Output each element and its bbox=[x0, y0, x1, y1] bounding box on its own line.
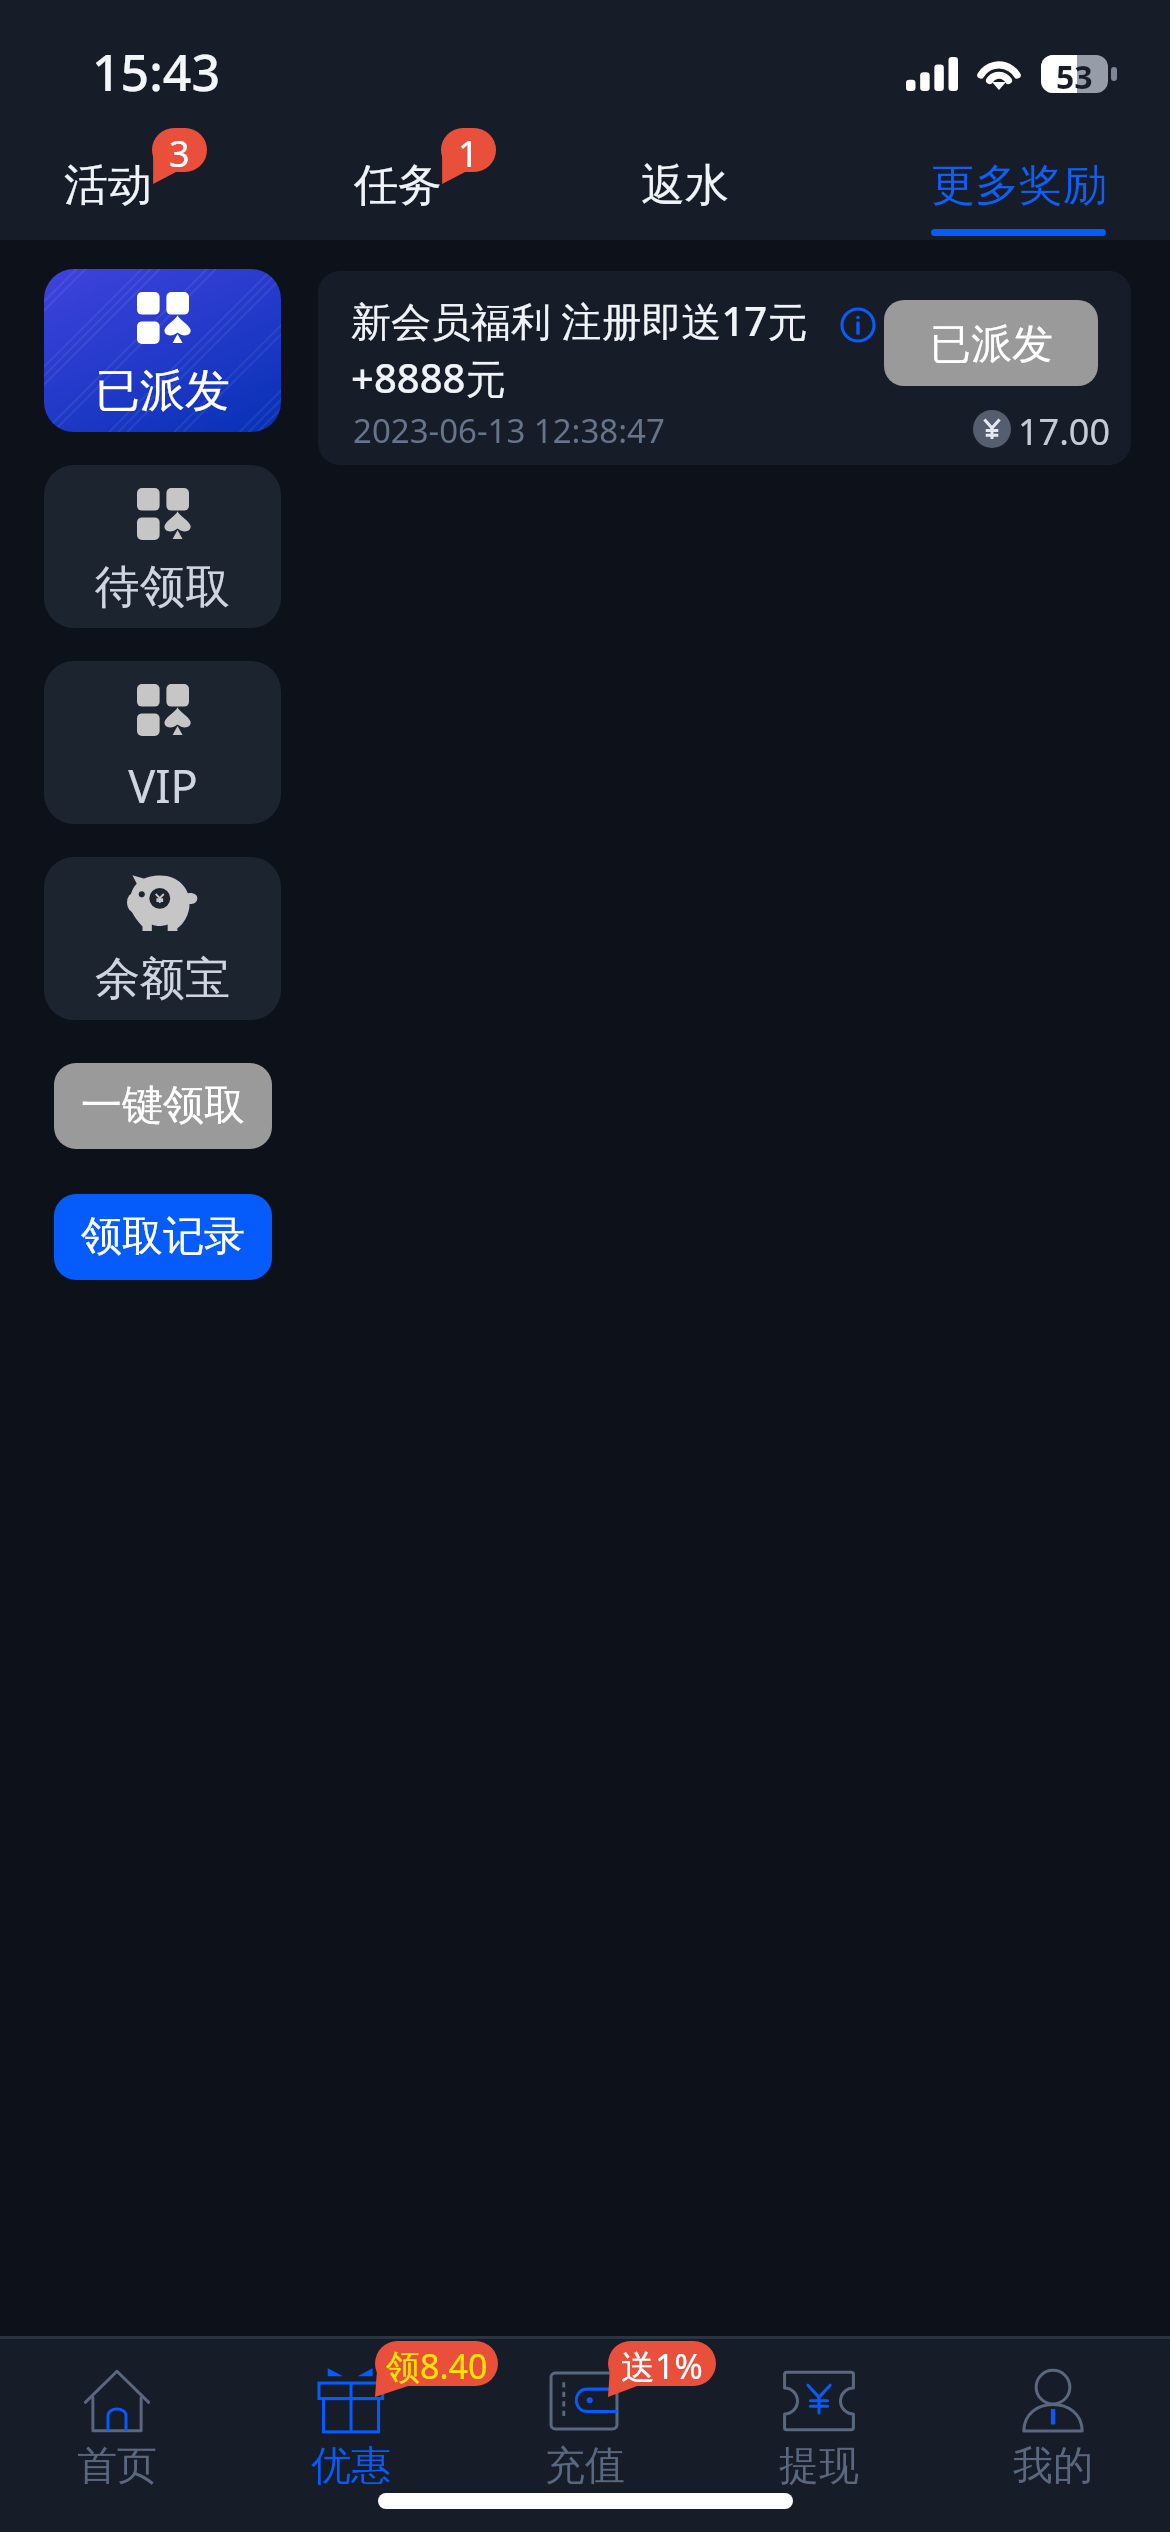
staticText: 3 bbox=[169, 129, 190, 178]
staticText: 领8.40 bbox=[386, 2343, 488, 2389]
button[interactable]: 活动说明 bbox=[840, 307, 876, 343]
button[interactable]: 一键领取 bbox=[54, 1063, 272, 1149]
staticText: 已派发 bbox=[930, 319, 1053, 371]
button[interactable]: 优惠 bbox=[234, 2336, 468, 2532]
button[interactable]: 已派发 bbox=[44, 269, 281, 432]
staticText: 领取记录 bbox=[81, 1211, 245, 1263]
staticText: 任务 bbox=[354, 158, 442, 213]
staticText: 15:43 bbox=[92, 38, 220, 106]
staticText: 优惠 bbox=[311, 2440, 391, 2490]
staticText: 余额宝 bbox=[95, 951, 230, 1008]
button[interactable]: 更多奖励 bbox=[903, 112, 1135, 240]
button[interactable]: 领取记录 bbox=[54, 1194, 272, 1280]
staticText: 更多奖励 bbox=[931, 158, 1107, 213]
staticText: 我的 bbox=[1013, 2440, 1093, 2490]
button[interactable]: 任务 bbox=[325, 112, 471, 240]
staticText: 送1% bbox=[621, 2343, 703, 2389]
staticText: 53 bbox=[1056, 55, 1093, 93]
staticText: 一键领取 bbox=[81, 1080, 245, 1132]
button[interactable]: 活动 bbox=[35, 112, 181, 240]
staticText: VIP bbox=[128, 755, 198, 816]
staticText: 待领取 bbox=[95, 559, 230, 616]
button[interactable]: 待领取 bbox=[44, 465, 281, 628]
button[interactable]: 提现 bbox=[702, 2336, 936, 2532]
button[interactable]: 充值 bbox=[468, 2336, 702, 2532]
button[interactable]: VIP bbox=[44, 661, 281, 824]
button[interactable]: 余额宝 bbox=[44, 857, 281, 1020]
staticText: 1 bbox=[458, 129, 479, 178]
staticText: 已派发 bbox=[95, 363, 230, 420]
staticText: 2023-06-13 12:38:47 bbox=[353, 408, 665, 453]
button[interactable]: 我的 bbox=[936, 2336, 1170, 2532]
staticText: 新会员福利 注册即送17元 +8888元 bbox=[351, 293, 808, 405]
button[interactable]: 首页 bbox=[0, 2336, 234, 2532]
staticText: 充值 bbox=[545, 2440, 625, 2490]
staticText: 提现 bbox=[779, 2440, 859, 2490]
staticText: 17.00 bbox=[1018, 407, 1111, 456]
staticText: 活动 bbox=[64, 158, 152, 213]
staticText: 首页 bbox=[77, 2440, 157, 2490]
button[interactable]: 已派发 bbox=[884, 300, 1098, 386]
button[interactable]: 返水 bbox=[612, 112, 758, 240]
staticText: 返水 bbox=[641, 158, 729, 213]
button[interactable]: 新会员福利 注册即送17元 +8888元 bbox=[318, 271, 1131, 465]
